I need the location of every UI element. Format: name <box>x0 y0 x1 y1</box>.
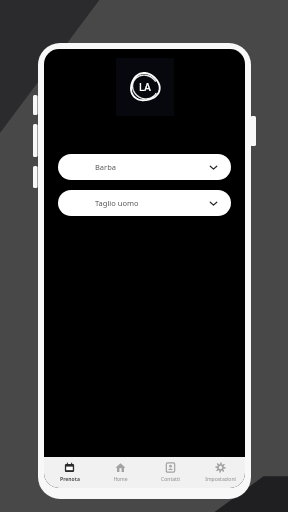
button[interactable]: Prenota <box>44 457 95 488</box>
staticText: Barba <box>95 162 116 172</box>
staticText: Prenota <box>60 476 80 483</box>
staticText: LA <box>139 80 151 94</box>
other: LA logo <box>128 70 162 104</box>
staticText: Home <box>113 476 128 483</box>
button[interactable]: Barba <box>58 154 231 180</box>
button[interactable]: Home <box>95 457 145 488</box>
staticText: Taglio uomo <box>95 198 139 208</box>
staticText: Contatti <box>161 476 180 483</box>
button[interactable]: Taglio uomo <box>58 190 231 216</box>
button[interactable]: Impostazioni <box>195 457 245 488</box>
staticText: Impostazioni <box>205 476 236 483</box>
button[interactable]: Contatti <box>145 457 195 488</box>
